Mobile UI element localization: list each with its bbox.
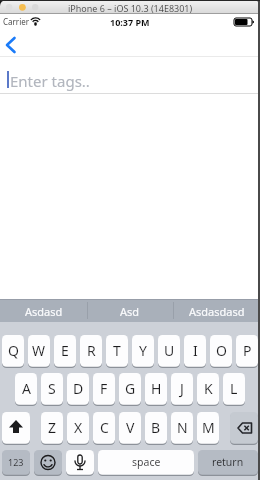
button[interactable] xyxy=(2,34,22,56)
staticText: A xyxy=(22,379,31,398)
button[interactable]: N xyxy=(171,412,193,445)
staticText: K xyxy=(204,379,213,398)
button[interactable]: B xyxy=(145,412,167,445)
staticText: B xyxy=(151,418,161,437)
button[interactable]: L xyxy=(223,373,245,406)
staticText: J xyxy=(180,379,184,398)
button[interactable] xyxy=(230,412,258,445)
button[interactable]: X xyxy=(67,412,89,445)
button[interactable]: Asdasd xyxy=(0,300,87,322)
staticText: X xyxy=(74,418,83,437)
staticText: Carrier xyxy=(3,16,30,27)
button[interactable]: I xyxy=(184,335,206,368)
button[interactable]: Asd xyxy=(87,300,173,322)
button[interactable]: S xyxy=(41,373,63,406)
button[interactable]: C xyxy=(93,412,115,445)
staticText: T xyxy=(113,341,121,360)
button[interactable]: K xyxy=(197,373,219,406)
button[interactable]: G xyxy=(119,373,141,406)
button[interactable]: F xyxy=(93,373,115,406)
staticText: U xyxy=(164,341,175,360)
staticText: F xyxy=(100,379,108,398)
staticText: E xyxy=(61,341,69,360)
staticText: Q xyxy=(8,341,19,360)
staticText: S xyxy=(48,379,56,398)
button[interactable]: Q xyxy=(2,335,24,368)
button[interactable]: E xyxy=(54,335,76,368)
button[interactable]: Enter tags.. xyxy=(0,57,260,93)
staticText: O xyxy=(216,341,227,360)
staticText: Enter tags.. xyxy=(10,71,90,91)
staticText: C xyxy=(100,418,109,437)
button[interactable]: Asdasdasd xyxy=(173,300,260,322)
button[interactable]: return xyxy=(198,450,258,476)
staticText: Y xyxy=(139,341,147,360)
button[interactable]: V xyxy=(119,412,141,445)
staticText: R xyxy=(87,341,96,360)
button[interactable]: Y xyxy=(132,335,154,368)
staticText: V xyxy=(126,418,135,437)
staticText: H xyxy=(151,379,162,398)
staticText: G xyxy=(125,379,136,398)
button[interactable]: H xyxy=(145,373,167,406)
staticText: iPhone 6 – iOS 10.3 (14E8301) xyxy=(68,2,193,14)
staticText: M xyxy=(202,418,215,437)
staticText: D xyxy=(73,379,84,398)
button[interactable]: O xyxy=(210,335,232,368)
staticText: P xyxy=(243,341,252,360)
button[interactable]: J xyxy=(171,373,193,406)
button[interactable] xyxy=(2,412,30,445)
button[interactable]: P xyxy=(236,335,258,368)
staticText: return xyxy=(212,455,244,469)
button[interactable]: space xyxy=(98,450,194,476)
staticText: I xyxy=(193,341,198,360)
staticText: Asdasd xyxy=(25,304,63,319)
staticText: N xyxy=(177,418,188,437)
staticText: Asdasdasd xyxy=(189,304,245,319)
button[interactable]: M xyxy=(197,412,219,445)
button[interactable]: Z xyxy=(41,412,63,445)
button[interactable] xyxy=(66,450,94,476)
button[interactable]: U xyxy=(158,335,180,368)
staticText: 123 xyxy=(8,456,24,468)
staticText: Asd xyxy=(120,304,140,319)
staticText: space xyxy=(132,455,161,469)
button[interactable]: R xyxy=(80,335,102,368)
staticText: Z xyxy=(48,418,57,437)
button[interactable]: 123 xyxy=(2,450,30,476)
staticText: L xyxy=(230,379,238,398)
staticText: 10:37 PM xyxy=(110,16,150,27)
button[interactable] xyxy=(34,450,62,476)
button[interactable]: W xyxy=(28,335,50,368)
staticText: W xyxy=(32,341,46,360)
button[interactable]: D xyxy=(67,373,89,406)
button[interactable]: A xyxy=(15,373,37,406)
button[interactable]: T xyxy=(106,335,128,368)
